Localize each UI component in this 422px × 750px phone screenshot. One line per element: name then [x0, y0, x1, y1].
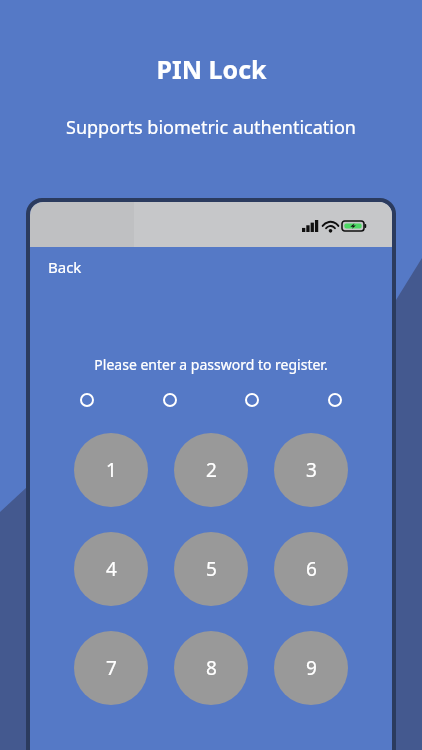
staticText: 2: [206, 457, 217, 483]
button[interactable]: Back: [30, 247, 82, 287]
staticText: Please enter a password to register.: [30, 355, 392, 374]
button[interactable]: 9: [274, 631, 348, 705]
staticText: 7: [106, 655, 117, 681]
staticText: 4: [106, 556, 117, 582]
staticText: 8: [206, 655, 217, 681]
other: Battery charging: [342, 220, 367, 232]
staticText: 9: [306, 655, 317, 681]
button[interactable]: 1: [74, 433, 148, 507]
staticText: PIN Lock: [156, 52, 267, 86]
staticText: Back: [48, 257, 82, 277]
button[interactable]: 7: [74, 631, 148, 705]
staticText: 6: [306, 556, 317, 582]
staticText: 1: [106, 457, 117, 483]
staticText: Supports biometric authentication: [66, 115, 356, 140]
button[interactable]: 2: [174, 433, 248, 507]
button[interactable]: 3: [274, 433, 348, 507]
staticText: 3: [306, 457, 317, 483]
button[interactable]: 6: [274, 532, 348, 606]
other: Wi-Fi: [323, 220, 338, 232]
staticText: 5: [206, 556, 217, 582]
button[interactable]: 5: [174, 532, 248, 606]
other: Cellular signal: [302, 220, 319, 232]
button[interactable]: 8: [174, 631, 248, 705]
button[interactable]: 4: [74, 532, 148, 606]
